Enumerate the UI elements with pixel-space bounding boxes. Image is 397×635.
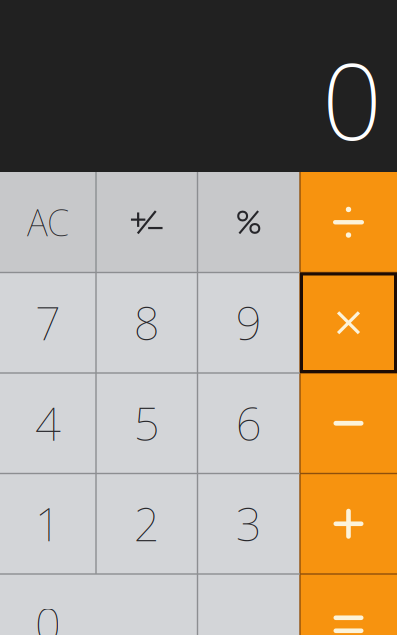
staticText: 5 xyxy=(134,393,160,453)
button[interactable]: 5 xyxy=(96,373,197,473)
button[interactable]: AC xyxy=(0,172,96,272)
button[interactable]: 6 xyxy=(197,373,300,473)
button[interactable]: 2 xyxy=(96,473,197,574)
button[interactable]: Percent xyxy=(197,172,300,272)
button[interactable]: 3 xyxy=(197,473,300,574)
staticText: 9 xyxy=(236,293,262,353)
staticText: AC xyxy=(27,198,69,246)
button[interactable]: 7 xyxy=(0,272,96,373)
staticText: 8 xyxy=(134,293,160,353)
staticText: 4 xyxy=(35,393,61,453)
button[interactable]: Minus xyxy=(300,373,397,473)
button[interactable]: 1 xyxy=(0,473,96,574)
button[interactable]: Multiply xyxy=(300,272,397,373)
staticText: 3 xyxy=(236,494,262,554)
staticText: 2 xyxy=(134,494,160,554)
staticText: 0 xyxy=(35,594,61,635)
button[interactable]: . xyxy=(197,574,300,635)
staticText: 6 xyxy=(236,393,262,453)
staticText: 7 xyxy=(35,293,61,353)
button[interactable]: Plus xyxy=(300,473,397,574)
button[interactable]: 8 xyxy=(96,272,197,373)
staticText: 0 xyxy=(322,29,382,169)
button[interactable]: Equals xyxy=(300,574,397,635)
button[interactable]: 0 xyxy=(0,574,197,635)
button[interactable]: 4 xyxy=(0,373,96,473)
button[interactable]: Divide xyxy=(300,172,397,272)
button[interactable]: Plus minus xyxy=(96,172,197,272)
button[interactable]: 9 xyxy=(197,272,300,373)
staticText: 1 xyxy=(35,494,61,554)
